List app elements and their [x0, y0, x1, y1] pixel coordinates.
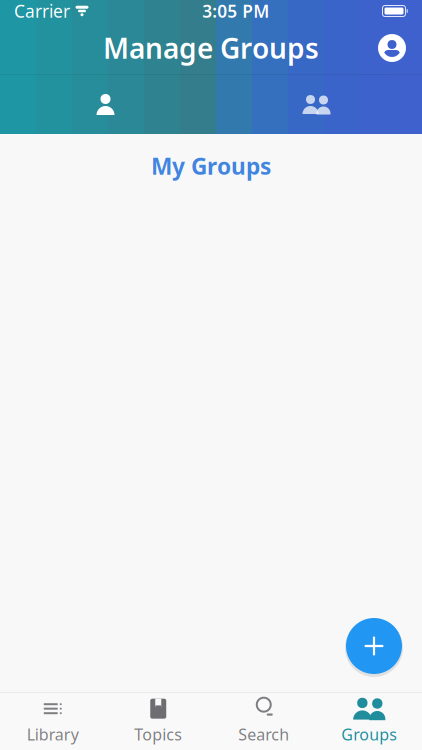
- button[interactable]: Groups: [211, 75, 422, 134]
- staticText: Carrier: [14, 0, 70, 22]
- button[interactable]: Search: [211, 693, 316, 750]
- staticText: Search: [238, 724, 289, 745]
- button[interactable]: Individuals: [0, 75, 211, 134]
- staticText: Groups: [341, 724, 397, 745]
- staticText: Manage Groups: [103, 29, 319, 67]
- staticText: My Groups: [151, 151, 271, 181]
- button[interactable]: Account: [370, 26, 414, 70]
- staticText: Library: [27, 724, 79, 745]
- staticText: Topics: [134, 724, 182, 745]
- button[interactable]: Library: [0, 693, 105, 750]
- staticText: 3:05 PM: [202, 0, 269, 22]
- button[interactable]: Add group: [343, 614, 405, 678]
- button[interactable]: Groups: [316, 693, 422, 750]
- button[interactable]: Topics: [105, 693, 211, 750]
